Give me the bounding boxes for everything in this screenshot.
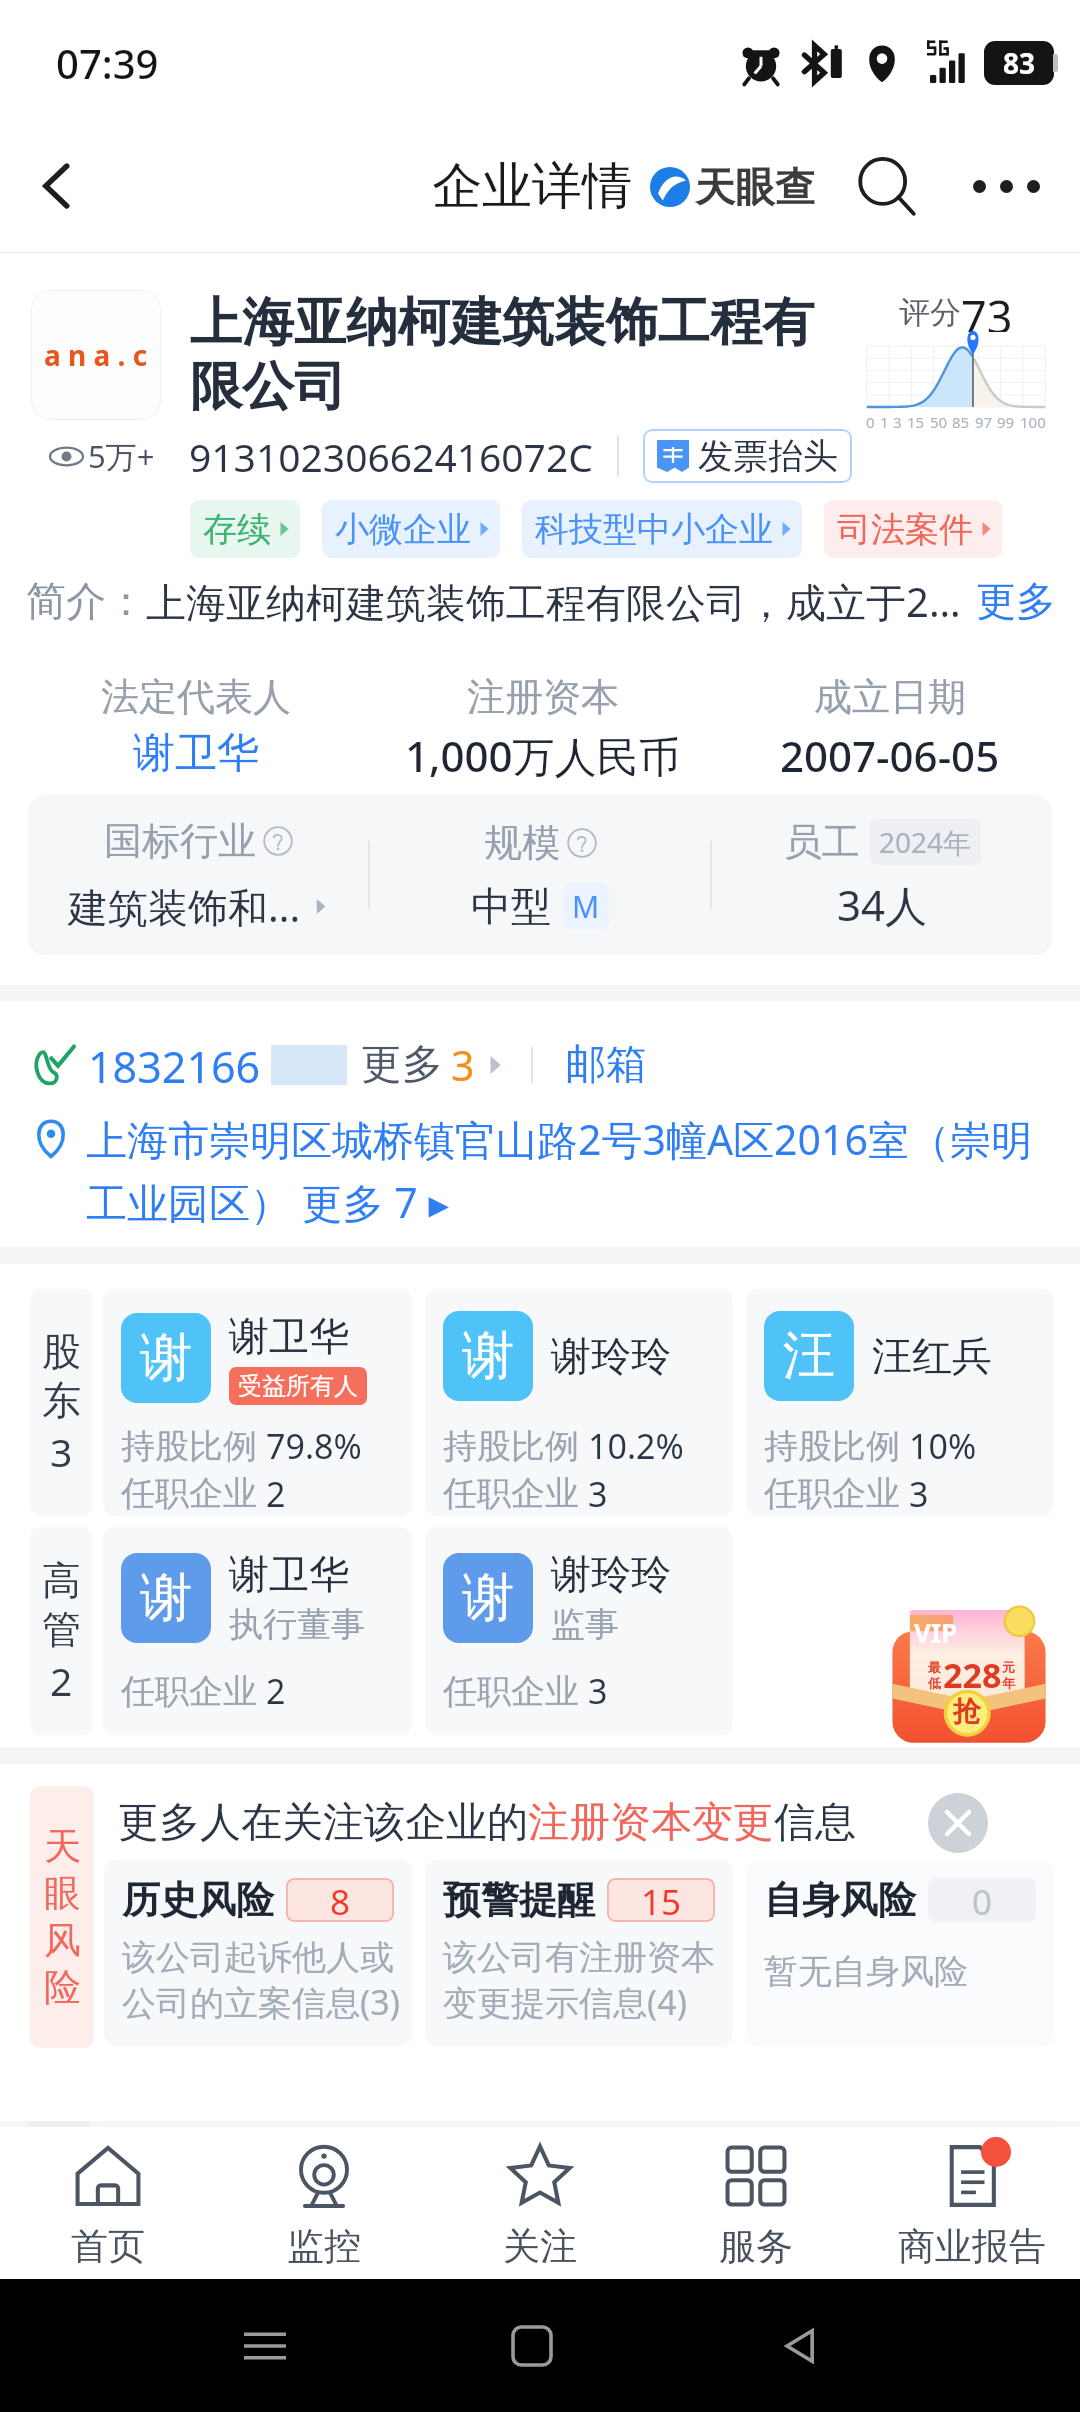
button[interactable]: 天 bbox=[30, 1786, 94, 2048]
button[interactable]: Score 73 bbox=[864, 286, 1048, 432]
button[interactable]: Back bbox=[760, 2306, 840, 2386]
button[interactable]: Search bbox=[840, 140, 932, 232]
button[interactable]: 上海亚纳柯建筑装饰工程有限公司 bbox=[190, 290, 838, 419]
button[interactable]: 发票抬头 bbox=[643, 429, 852, 483]
button[interactable]: Back bbox=[10, 140, 102, 232]
button[interactable]: 上海市崇明区城桥镇官山路2号3幢A区2016室（崇明工业园区） 更多 7 ▸ bbox=[30, 1111, 1064, 1230]
button[interactable]: 监控 bbox=[216, 2127, 432, 2279]
button[interactable]: Home bbox=[492, 2306, 572, 2386]
staticText: 发票抬头 bbox=[698, 434, 838, 478]
button[interactable]: 服务 bbox=[648, 2127, 864, 2279]
staticText: 2 bbox=[50, 1654, 73, 1707]
button[interactable]: Company logo bbox=[31, 290, 161, 420]
staticText: 规模 bbox=[484, 819, 560, 867]
staticText: 2 bbox=[266, 1668, 286, 1714]
staticText: M bbox=[572, 886, 600, 927]
button[interactable]: 谢 bbox=[103, 1527, 412, 1735]
staticText: 高 bbox=[42, 1556, 81, 1605]
button[interactable]: 股 bbox=[30, 1289, 92, 1516]
button[interactable]: 谢 bbox=[425, 1289, 733, 1516]
staticText: 10.2% bbox=[588, 1423, 684, 1469]
button[interactable]: 历史风险 bbox=[104, 1860, 412, 2046]
staticText: 34人 bbox=[837, 876, 928, 933]
staticText: 2024年 bbox=[879, 823, 972, 861]
staticText: 建筑装饰和... bbox=[68, 879, 301, 934]
staticText: 更多 bbox=[361, 1039, 443, 1091]
staticText: 更多人在关注该企业的 bbox=[118, 1797, 528, 1849]
staticText: 任职企业 bbox=[764, 1472, 900, 1515]
staticText: 谢玲玲 bbox=[551, 1331, 671, 1381]
staticText: 成立日期 bbox=[814, 673, 966, 721]
staticText: 历史风险 bbox=[122, 1876, 274, 1924]
staticText: 自身风险 bbox=[764, 1876, 916, 1924]
staticText: 99 bbox=[997, 412, 1015, 432]
staticText: 任职企业 bbox=[121, 1670, 257, 1713]
staticText: 预警提醒 bbox=[443, 1876, 595, 1924]
staticText: 天眼查 bbox=[695, 162, 815, 212]
staticText: 汪红兵 bbox=[872, 1331, 992, 1381]
staticText: 险 bbox=[44, 1964, 81, 2011]
button[interactable]: Tianyancha bbox=[650, 162, 815, 212]
staticText: 司法案件 bbox=[837, 508, 973, 551]
staticText: 谢玲玲 bbox=[551, 1549, 671, 1599]
staticText: 83 bbox=[1003, 44, 1036, 82]
button[interactable]: 成立日期 bbox=[720, 673, 1060, 784]
staticText: 3 bbox=[893, 412, 902, 432]
button[interactable]: VIP offer 228 per year bbox=[882, 1582, 1056, 1746]
staticText: 该公司有注册资本 bbox=[443, 1936, 715, 1979]
staticText: 商业报告 bbox=[898, 2223, 1046, 2270]
button[interactable]: Recent apps bbox=[225, 2306, 305, 2386]
button[interactable]: 规模 bbox=[370, 819, 710, 931]
staticText: 任职企业 bbox=[443, 1472, 579, 1515]
button[interactable]: 法定代表人 bbox=[26, 673, 366, 780]
button[interactable]: 谢 bbox=[425, 1527, 733, 1735]
staticText: 上海亚纳柯建筑装饰工程有限公司，成立于20... bbox=[146, 574, 976, 629]
button[interactable]: 谢 bbox=[103, 1289, 412, 1516]
staticText: a n a . c bbox=[44, 336, 148, 374]
staticText: 3 bbox=[50, 1425, 73, 1478]
button[interactable]: 小微企业 bbox=[322, 500, 500, 558]
staticText: 0 bbox=[866, 412, 875, 432]
button[interactable]: 科技型中小企业 bbox=[522, 500, 802, 558]
staticText: 100 bbox=[1020, 412, 1046, 432]
staticText: 1 bbox=[880, 412, 889, 432]
button[interactable]: 司法案件 bbox=[824, 500, 1002, 558]
staticText: 3 bbox=[588, 1471, 608, 1516]
button[interactable]: 国标行业 bbox=[28, 817, 368, 934]
staticText: 法定代表人 bbox=[101, 673, 291, 721]
button[interactable]: 简介： bbox=[26, 573, 1056, 629]
button[interactable]: More options bbox=[958, 138, 1054, 234]
button[interactable]: 存续 bbox=[190, 500, 300, 558]
button[interactable]: 邮箱 bbox=[565, 1039, 647, 1091]
button[interactable]: 高 bbox=[30, 1527, 92, 1735]
staticText: 谢 bbox=[462, 1323, 514, 1389]
button[interactable]: 商业报告 bbox=[864, 2127, 1080, 2279]
staticText: 97 bbox=[975, 412, 993, 432]
staticText: 注册资本 bbox=[467, 673, 619, 721]
staticText: 15 bbox=[907, 412, 925, 432]
button[interactable]: 企业详情 bbox=[432, 155, 632, 218]
staticText: VIP bbox=[914, 1615, 958, 1650]
button[interactable]: 首页 bbox=[0, 2127, 216, 2279]
staticText: 8 bbox=[330, 1878, 351, 1922]
staticText: 持股比例 bbox=[764, 1425, 900, 1468]
button[interactable]: Close bbox=[928, 1793, 988, 1853]
staticText: 73 bbox=[961, 286, 1013, 332]
staticText: 小微企业 bbox=[335, 508, 471, 551]
button[interactable]: 员工 bbox=[712, 818, 1052, 933]
staticText: 91310230662416072C bbox=[189, 430, 593, 483]
button[interactable]: 1832166 bbox=[32, 1037, 1080, 1093]
staticText: 07:39 bbox=[56, 36, 159, 90]
button[interactable]: 预警提醒 bbox=[425, 1860, 733, 2046]
staticText: 0 bbox=[972, 1878, 993, 1922]
staticText: 更多 bbox=[976, 576, 1056, 626]
button[interactable]: 注册资本 bbox=[366, 673, 720, 784]
staticText: 15 bbox=[641, 1878, 682, 1922]
staticText: 上海市崇明区城桥镇官山路2号3幢A区2016室（崇明工业园区） 更多 7 ▸ bbox=[86, 1111, 1064, 1230]
button[interactable]: 汪 bbox=[746, 1289, 1054, 1516]
button[interactable]: 自身风险 bbox=[746, 1860, 1054, 2046]
button[interactable]: 关注 bbox=[432, 2127, 648, 2279]
staticText: 79.8% bbox=[266, 1423, 362, 1469]
staticText: 风 bbox=[44, 1917, 81, 1964]
staticText: 管 bbox=[42, 1605, 81, 1654]
